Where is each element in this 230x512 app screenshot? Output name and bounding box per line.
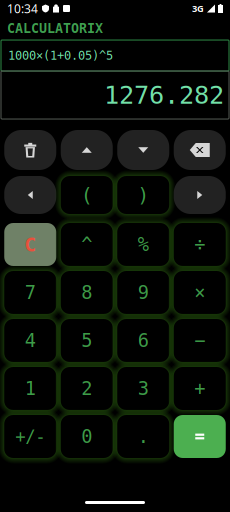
button[interactable]: + (174, 367, 226, 410)
staticText: 9 (138, 282, 149, 303)
staticText: % (138, 234, 149, 255)
button[interactable] (174, 130, 226, 170)
button[interactable]: − (174, 319, 226, 362)
staticText: +/- (15, 427, 45, 446)
staticText: 7 (25, 282, 36, 303)
staticText: − (194, 330, 205, 351)
staticText: ) (137, 184, 149, 206)
button[interactable]: 6 (117, 319, 169, 362)
staticText: C (24, 233, 36, 256)
button[interactable]: ^ (61, 223, 113, 266)
staticText: . (138, 426, 149, 447)
button[interactable] (4, 176, 56, 214)
staticText: 1000×(1+0.05)^5 (8, 49, 113, 62)
button[interactable]: 8 (61, 271, 113, 314)
staticText: 0 (81, 426, 92, 447)
staticText: 10:34 (7, 0, 38, 16)
staticText: 2 (81, 378, 92, 399)
staticText: ^ (81, 234, 92, 255)
staticText: + (194, 378, 205, 399)
button[interactable]: 4 (4, 319, 56, 362)
button[interactable] (61, 130, 113, 170)
button[interactable]: % (117, 223, 169, 266)
button[interactable]: . (117, 415, 169, 458)
staticText: 1 (25, 378, 36, 399)
button[interactable]: C (4, 223, 56, 266)
button[interactable] (174, 415, 226, 458)
button[interactable]: 5 (61, 319, 113, 362)
button[interactable]: 0 (61, 415, 113, 458)
button[interactable]: × (174, 271, 226, 314)
button[interactable]: ( (61, 176, 113, 214)
button[interactable]: 1 (4, 367, 56, 410)
staticText: ÷ (194, 234, 205, 255)
staticText: CALCULATORIX (7, 21, 103, 36)
button[interactable]: ÷ (174, 223, 226, 266)
staticText: 3G (192, 2, 204, 15)
button[interactable] (4, 130, 56, 170)
button[interactable]: 7 (4, 271, 56, 314)
button[interactable]: ) (117, 176, 169, 214)
button[interactable] (174, 176, 226, 214)
staticText: 4 (25, 330, 36, 351)
staticText: 8 (81, 282, 92, 303)
staticText: 6 (138, 330, 149, 351)
button[interactable]: 9 (117, 271, 169, 314)
button[interactable]: 2 (61, 367, 113, 410)
button[interactable]: +/- (4, 415, 56, 458)
staticText: 3 (138, 378, 149, 399)
button[interactable] (117, 130, 169, 170)
staticText: 5 (81, 330, 92, 351)
staticText: 1276.282 (104, 81, 224, 109)
staticText: ( (81, 184, 93, 206)
staticText: × (194, 282, 205, 303)
button[interactable]: 3 (117, 367, 169, 410)
